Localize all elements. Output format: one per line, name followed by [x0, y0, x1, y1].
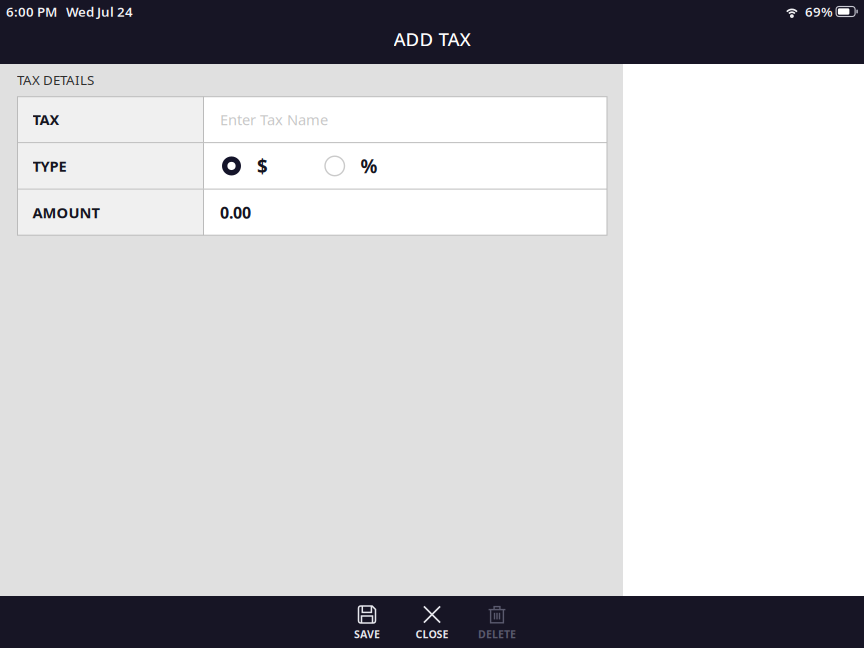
staticText: Enter Tax Name	[220, 110, 328, 129]
button[interactable]: DELETE	[464, 596, 529, 648]
staticText: ADD TAX	[393, 27, 470, 51]
staticText: TAX DETAILS	[17, 71, 94, 89]
staticText: 6:00 PM	[6, 3, 57, 20]
staticText: TAX	[32, 110, 59, 129]
staticText: AMOUNT	[32, 203, 99, 222]
staticText: Wed Jul 24	[66, 3, 133, 20]
staticText: 69%	[805, 3, 833, 20]
button[interactable]: $	[222, 144, 268, 188]
staticText: 0.00	[220, 202, 251, 223]
staticText: %	[360, 154, 377, 178]
staticText: TYPE	[32, 156, 66, 176]
button[interactable]: CLOSE	[399, 596, 464, 648]
staticText: SAVE	[354, 627, 380, 641]
staticText: DELETE	[478, 627, 516, 641]
button[interactable]: %	[325, 144, 377, 188]
staticText: CLOSE	[415, 627, 448, 641]
button[interactable]: SAVE	[334, 596, 399, 648]
staticText: $	[257, 154, 268, 178]
